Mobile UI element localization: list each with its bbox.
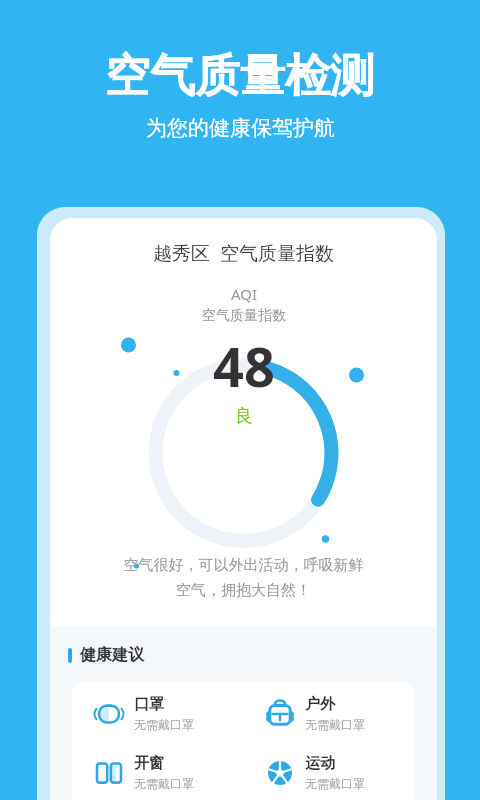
staticText: 良 bbox=[235, 405, 253, 428]
other: 运动 bbox=[265, 758, 295, 788]
staticText: 48 bbox=[213, 329, 275, 403]
button[interactable]: 户外 bbox=[243, 695, 415, 732]
staticText: 无需戴口罩 bbox=[305, 776, 365, 791]
staticText: 健康建议 bbox=[80, 645, 144, 665]
button[interactable]: 运动 bbox=[243, 754, 415, 791]
other: 开窗 bbox=[94, 758, 124, 788]
staticText: 空气质量检测 bbox=[105, 48, 375, 105]
other: 户外 bbox=[265, 699, 295, 729]
staticText: 无需戴口罩 bbox=[134, 717, 194, 732]
button[interactable]: 开窗 bbox=[72, 754, 243, 791]
staticText: 空气质量指数 bbox=[202, 307, 286, 325]
staticText: 无需戴口罩 bbox=[305, 717, 365, 732]
staticText: 空气很好，可以外出活动，呼吸新鲜 空气，拥抱大自然！ bbox=[78, 556, 409, 599]
staticText: 无需戴口罩 bbox=[134, 776, 194, 791]
staticText: 运动 bbox=[305, 754, 335, 773]
staticText: 开窗 bbox=[134, 754, 164, 773]
staticText: 为您的健康保驾护航 bbox=[146, 115, 335, 141]
button[interactable]: 口罩 bbox=[72, 695, 243, 732]
staticText: 越秀区 空气质量指数 bbox=[50, 240, 437, 266]
other: 口罩 bbox=[94, 699, 124, 729]
staticText: 口罩 bbox=[134, 695, 164, 714]
staticText: AQI bbox=[231, 284, 258, 304]
staticText: 户外 bbox=[305, 695, 335, 714]
